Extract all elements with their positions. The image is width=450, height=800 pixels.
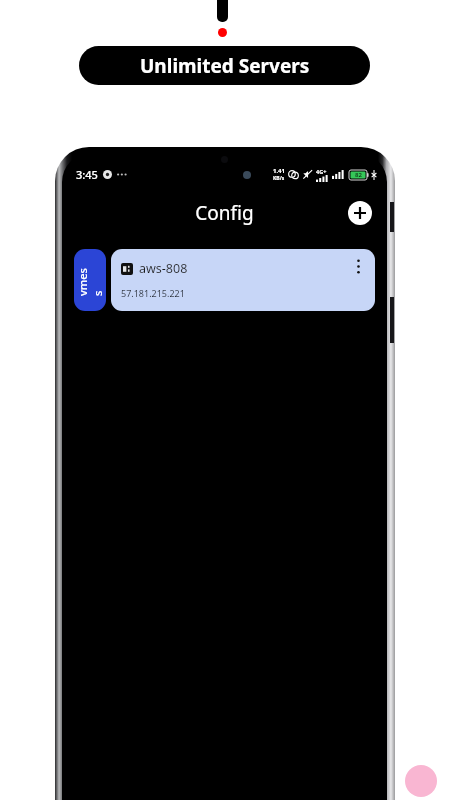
- staticText: 82: [355, 171, 362, 179]
- staticText: 57.181.215.221: [121, 287, 185, 299]
- staticText: aws-808: [139, 260, 188, 277]
- staticText: Unlimited Servers: [140, 53, 310, 79]
- button[interactable]: Add config: [348, 201, 372, 225]
- staticText: KB/s: [273, 175, 285, 182]
- staticText: 3:45: [76, 167, 98, 182]
- button[interactable]: More options: [345, 253, 371, 279]
- button[interactable]: vmess: [74, 249, 106, 311]
- button[interactable]: Unlimited Servers: [79, 46, 370, 85]
- button[interactable]: aws-808: [111, 249, 375, 311]
- staticText: vmess: [75, 264, 105, 296]
- staticText: Config: [195, 200, 254, 226]
- staticText: 1.41: [273, 167, 285, 175]
- staticText: 4G+: [316, 168, 327, 175]
